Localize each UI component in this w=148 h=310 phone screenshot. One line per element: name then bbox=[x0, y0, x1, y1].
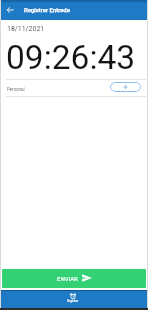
staticText: 09:26:43 bbox=[6, 38, 136, 77]
button[interactable]: Back bbox=[0, 2, 18, 20]
button[interactable]: ENVIAR bbox=[2, 269, 146, 288]
staticText: Registrar bbox=[67, 299, 79, 302]
staticText: Personal bbox=[7, 87, 25, 92]
staticText: Registrar Entrada bbox=[24, 6, 70, 13]
button[interactable]: Registrar bbox=[57, 292, 89, 303]
button[interactable]: Add personnel bbox=[110, 82, 141, 92]
staticText: ENVIAR bbox=[57, 275, 78, 282]
staticText: 18/11/2021 bbox=[7, 25, 45, 33]
